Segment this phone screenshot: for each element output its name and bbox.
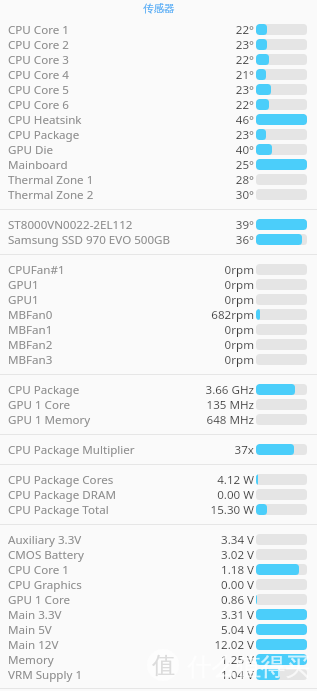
staticText: 1.04 V (221, 667, 254, 682)
staticText: ST8000VN0022-2EL112 (8, 217, 235, 232)
button[interactable]: Samsung SSD 970 EVO 500GB (0, 232, 317, 247)
staticText: 22° (235, 52, 254, 67)
button[interactable]: CPU Core 2 (0, 37, 317, 52)
staticText: 0rpm (224, 292, 254, 307)
staticText: Mainboard (8, 157, 235, 172)
button[interactable]: CPU Heatsink (0, 112, 317, 127)
staticText: Auxiliary 3.3V (8, 532, 221, 547)
staticText: GPU1 (8, 292, 224, 307)
button[interactable]: CPU Core 1 (0, 562, 317, 577)
staticText: 36° (235, 232, 254, 247)
staticText: 0.00 V (221, 577, 254, 592)
button[interactable]: MBFan1 (0, 322, 317, 337)
staticText: 5.04 V (221, 622, 254, 637)
staticText: 23° (235, 37, 254, 52)
staticText: CPU Core 6 (8, 97, 235, 112)
button[interactable]: CPU Package (0, 127, 317, 142)
button[interactable]: MBFan3 (0, 352, 317, 367)
button[interactable]: GPU 1 Core (0, 592, 317, 607)
staticText: 0rpm (224, 277, 254, 292)
staticText: 12.02 V (214, 637, 254, 652)
staticText: 682rpm (211, 307, 254, 322)
button[interactable]: CPU Package Total (0, 502, 317, 517)
staticText: CPU Package DRAM (8, 487, 217, 502)
button[interactable]: CPU Core 5 (0, 82, 317, 97)
staticText: 135 MHz (206, 397, 254, 412)
button[interactable]: Main 12V (0, 637, 317, 652)
staticText: CPU Graphics (8, 577, 221, 592)
staticText: 22° (235, 97, 254, 112)
button[interactable]: VRM Supply 1 (0, 667, 317, 682)
staticText: VRM Supply 1 (8, 667, 221, 682)
button[interactable]: CMOS Battery (0, 547, 317, 562)
button[interactable]: MBFan0 (0, 307, 317, 322)
button[interactable]: Memory (0, 652, 317, 667)
staticText: MBFan3 (8, 352, 224, 367)
staticText: Thermal Zone 2 (8, 187, 235, 202)
button[interactable]: Auxiliary 3.3V (0, 532, 317, 547)
button[interactable]: CPU Package DRAM (0, 487, 317, 502)
button[interactable]: CPU Graphics (0, 577, 317, 592)
button[interactable]: CPU Package Cores (0, 472, 317, 487)
staticText: CMOS Battery (8, 547, 221, 562)
button[interactable]: CPU Core 3 (0, 52, 317, 67)
staticText: 0rpm (224, 262, 254, 277)
staticText: 21° (235, 67, 254, 82)
button[interactable]: CPU Core 4 (0, 67, 317, 82)
staticText: 28° (235, 172, 254, 187)
button[interactable]: GPU1 (0, 292, 317, 307)
staticText: CPU Core 1 (8, 562, 221, 577)
staticText: 3.31 V (221, 607, 254, 622)
staticText: 23° (235, 127, 254, 142)
button[interactable]: GPU 1 Memory (0, 412, 317, 427)
button[interactable]: CPUFan#1 (0, 262, 317, 277)
button[interactable]: Main 5V (0, 622, 317, 637)
button[interactable]: CPU Package Multiplier (0, 442, 317, 457)
staticText: CPUFan#1 (8, 262, 224, 277)
staticText: GPU 1 Core (8, 592, 221, 607)
staticText: CPU Package (8, 382, 205, 397)
staticText: 25° (235, 157, 254, 172)
staticText: 4.12 W (217, 472, 254, 487)
button[interactable]: Thermal Zone 1 (0, 172, 317, 187)
staticText: 39° (235, 217, 254, 232)
staticText: 15.30 W (210, 502, 254, 517)
staticText: GPU1 (8, 277, 224, 292)
staticText: MBFan0 (8, 307, 211, 322)
staticText: 23° (235, 82, 254, 97)
staticText: CPU Package Total (8, 502, 210, 517)
staticText: CPU Core 4 (8, 67, 235, 82)
button[interactable]: ST8000VN0022-2EL112 (0, 217, 317, 232)
button[interactable]: CPU Core 1 (0, 22, 317, 37)
staticText: 0.86 V (221, 592, 254, 607)
button[interactable]: Main 3.3V (0, 607, 317, 622)
staticText: Main 3.3V (8, 607, 221, 622)
staticText: 648 MHz (206, 412, 254, 427)
button[interactable]: MBFan2 (0, 337, 317, 352)
button[interactable]: GPU 1 Core (0, 397, 317, 412)
button[interactable]: CPU Package (0, 382, 317, 397)
staticText: 30° (235, 187, 254, 202)
staticText: 值 (152, 651, 175, 680)
staticText: 3.02 V (221, 547, 254, 562)
staticText: 22° (235, 22, 254, 37)
staticText: MBFan1 (8, 322, 224, 337)
staticText: 40° (235, 142, 254, 157)
staticText: Memory (8, 652, 221, 667)
staticText: 37x (234, 442, 254, 457)
button[interactable]: GPU1 (0, 277, 317, 292)
staticText: MBFan2 (8, 337, 224, 352)
staticText: Main 12V (8, 637, 214, 652)
staticText: 0rpm (224, 352, 254, 367)
button[interactable]: GPU Die (0, 142, 317, 157)
staticText: 0rpm (224, 337, 254, 352)
staticText: 3.34 V (221, 532, 254, 547)
staticText: CPU Package Multiplier (8, 442, 234, 457)
staticText: CPU Package (8, 127, 235, 142)
button[interactable]: Mainboard (0, 157, 317, 172)
button[interactable]: Thermal Zone 2 (0, 187, 317, 202)
staticText: 3.66 GHz (205, 382, 254, 397)
staticText: GPU 1 Memory (8, 412, 206, 427)
staticText: CPU Heatsink (8, 112, 235, 127)
button[interactable]: CPU Core 6 (0, 97, 317, 112)
